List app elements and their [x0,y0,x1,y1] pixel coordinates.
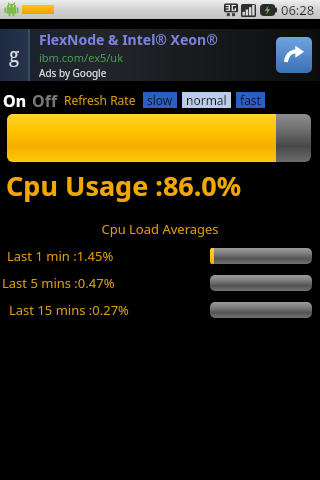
staticText: ibm.com/ex5/uk [39,50,124,65]
button[interactable]: On [3,90,27,110]
staticText: Off [32,90,58,110]
staticText: slow [147,92,173,108]
button[interactable]: Open advertisement [276,37,312,73]
button[interactable]: fast [236,92,265,108]
button[interactable]: slow [143,92,177,108]
staticText: On [3,90,27,110]
staticText: Refresh Rate [64,92,136,108]
staticText: Last 5 mins :0.47% [2,274,115,292]
staticText: FlexNode & Intel® Xeon® [39,30,218,49]
staticText: fast [240,92,261,108]
staticText: Cpu Usage :86.0% [6,167,242,204]
button[interactable]: normal [182,92,231,108]
button[interactable]: Last 5 mins :0.47% [0,274,320,292]
staticText: Cpu Load Averages [0,220,320,238]
staticText: Ads by Google [39,66,107,80]
button[interactable]: Last 15 mins :0.27% [0,301,320,319]
button[interactable]: Last 1 min :1.45% [0,247,320,265]
button[interactable]: g [0,29,320,81]
staticText: g [9,42,20,68]
staticText: 06:28 [281,1,315,19]
staticText: Last 15 mins :0.27% [9,301,129,319]
button[interactable]: Off [32,90,58,110]
staticText: normal [186,92,227,108]
staticText: Last 1 min :1.45% [7,247,114,265]
